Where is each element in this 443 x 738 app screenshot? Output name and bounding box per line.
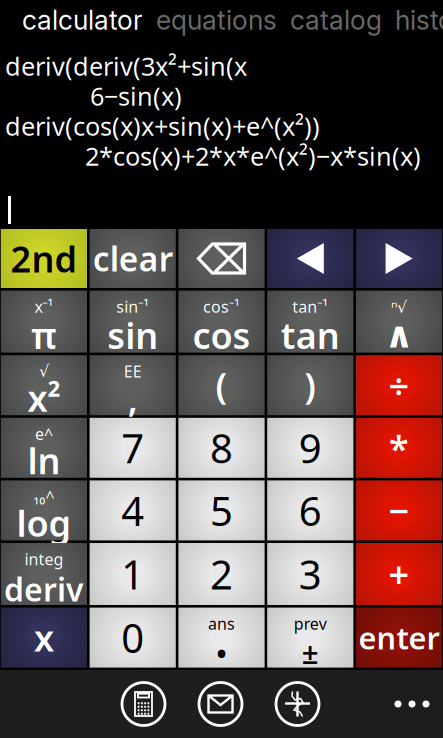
button[interactable]: )	[267, 355, 353, 415]
staticText: EE	[124, 361, 142, 382]
button[interactable]: Graph	[259, 677, 336, 731]
button[interactable]: clear	[90, 229, 176, 288]
staticText: √	[39, 362, 49, 380]
button[interactable]: 5	[178, 480, 265, 540]
button[interactable]: prev	[267, 608, 353, 668]
staticText: sin	[107, 311, 158, 359]
staticText: 1	[121, 547, 144, 600]
staticText: ±	[302, 633, 319, 672]
staticText: deriv(cos(x)x+sin(x)+e^(x²))	[5, 109, 320, 143]
staticText: ,	[128, 374, 138, 422]
staticText: 6	[299, 484, 322, 537]
staticText: 4	[121, 484, 144, 537]
button[interactable]: 4	[90, 480, 176, 540]
staticText: tan⁻¹	[292, 296, 328, 317]
staticText: deriv(deriv(3x²+sin(x	[5, 49, 247, 83]
staticText: 2*cos(x)+2*x*e^(x²)−x*sin(x)	[85, 139, 421, 173]
staticText: integ	[24, 548, 63, 570]
staticText: π	[31, 311, 57, 359]
staticText: 9	[299, 421, 322, 474]
button[interactable]: tan⁻¹	[267, 291, 353, 353]
staticText: −	[389, 486, 410, 534]
button[interactable]: ₁₀^	[1, 480, 87, 540]
staticText: *	[389, 424, 409, 472]
staticText: 7	[121, 421, 144, 474]
staticText: (	[215, 361, 227, 409]
staticText: x⁻¹	[34, 296, 53, 317]
button[interactable]: −	[356, 480, 442, 540]
button[interactable]: 2nd	[1, 229, 87, 288]
staticText: equations	[156, 4, 277, 36]
staticText: tan	[281, 311, 340, 359]
button[interactable]: 9	[267, 418, 353, 478]
button[interactable]: ⁿ√	[356, 291, 442, 353]
button[interactable]: e^	[1, 418, 87, 478]
button[interactable]: Calculator	[105, 677, 182, 731]
staticText: sin⁻¹	[116, 296, 149, 317]
staticText: )	[304, 361, 316, 409]
button[interactable]: Left	[267, 229, 353, 288]
staticText: 2	[210, 547, 233, 600]
button[interactable]: Messages	[182, 677, 259, 731]
staticText: ln	[27, 436, 60, 484]
staticText: cos	[192, 311, 250, 359]
staticText: histo	[395, 4, 443, 36]
staticText: •	[216, 633, 227, 672]
button[interactable]: Backspace	[178, 229, 265, 288]
button[interactable]: integ	[1, 543, 87, 605]
button[interactable]: 1	[90, 543, 176, 605]
button[interactable]: 6	[267, 480, 353, 540]
button[interactable]: More	[381, 679, 443, 729]
staticText: prev	[294, 613, 327, 634]
button[interactable]: 2	[178, 543, 265, 605]
button[interactable]: 7	[90, 418, 176, 478]
staticText: x	[34, 614, 54, 661]
staticText: 8	[210, 421, 233, 474]
staticText: 0	[121, 611, 144, 664]
button[interactable]: 8	[178, 418, 265, 478]
button[interactable]: x	[1, 608, 87, 668]
button[interactable]: ÷	[356, 355, 442, 415]
button[interactable]: x⁻¹	[1, 291, 87, 353]
staticText: 6−sin(x)	[90, 79, 182, 113]
button[interactable]: 0	[90, 608, 176, 668]
staticText: e^	[35, 423, 53, 444]
button[interactable]: 3	[267, 543, 353, 605]
staticText: ans	[208, 613, 235, 634]
staticText: enter	[359, 617, 440, 658]
staticText: ⁿ√	[391, 296, 407, 317]
button[interactable]: √	[1, 355, 87, 415]
button[interactable]: EE	[90, 355, 176, 415]
staticText: 5	[210, 484, 233, 537]
button[interactable]: ans	[178, 608, 265, 668]
staticText: ∧	[385, 315, 414, 356]
staticText: calculator	[22, 4, 143, 36]
button[interactable]: Right	[356, 229, 442, 288]
button[interactable]: (	[178, 355, 265, 415]
staticText: x²	[27, 374, 60, 422]
button[interactable]: enter	[356, 608, 442, 668]
button[interactable]: +	[356, 543, 442, 605]
staticText: catalog	[290, 4, 382, 36]
staticText: ÷	[389, 361, 410, 409]
button[interactable]: cos⁻¹	[178, 291, 265, 353]
staticText: log	[16, 499, 71, 547]
staticText: deriv	[4, 568, 84, 610]
staticText: ₁₀^	[33, 486, 54, 507]
staticText: cos⁻¹	[203, 296, 240, 317]
button[interactable]: sin⁻¹	[90, 291, 176, 353]
staticText: clear	[93, 236, 173, 281]
button[interactable]: *	[356, 418, 442, 478]
staticText: +	[389, 550, 410, 598]
staticText: 3	[299, 547, 322, 600]
staticText: 2nd	[10, 235, 77, 282]
